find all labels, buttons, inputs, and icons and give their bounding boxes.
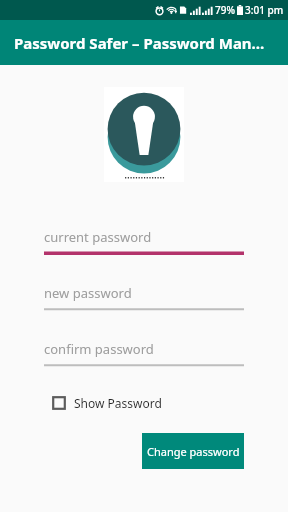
- button[interactable]: confirm password: [44, 340, 244, 367]
- staticText: Change password: [147, 444, 240, 459]
- staticText: current password: [44, 228, 152, 246]
- staticText: confirm password: [44, 340, 154, 358]
- button[interactable]: current password: [44, 228, 244, 255]
- staticText: Password Safer – Password Man…: [14, 33, 265, 53]
- staticText: 3:01 pm: [245, 3, 284, 17]
- button[interactable]: new password: [44, 284, 244, 311]
- staticText: 79%: [215, 3, 235, 17]
- staticText: new password: [44, 284, 132, 302]
- staticText: Show Password: [74, 395, 162, 411]
- button[interactable]: Show Password checkbox: [52, 395, 244, 411]
- other: Show Password checkbox: [52, 396, 66, 410]
- button[interactable]: Change password: [142, 433, 244, 469]
